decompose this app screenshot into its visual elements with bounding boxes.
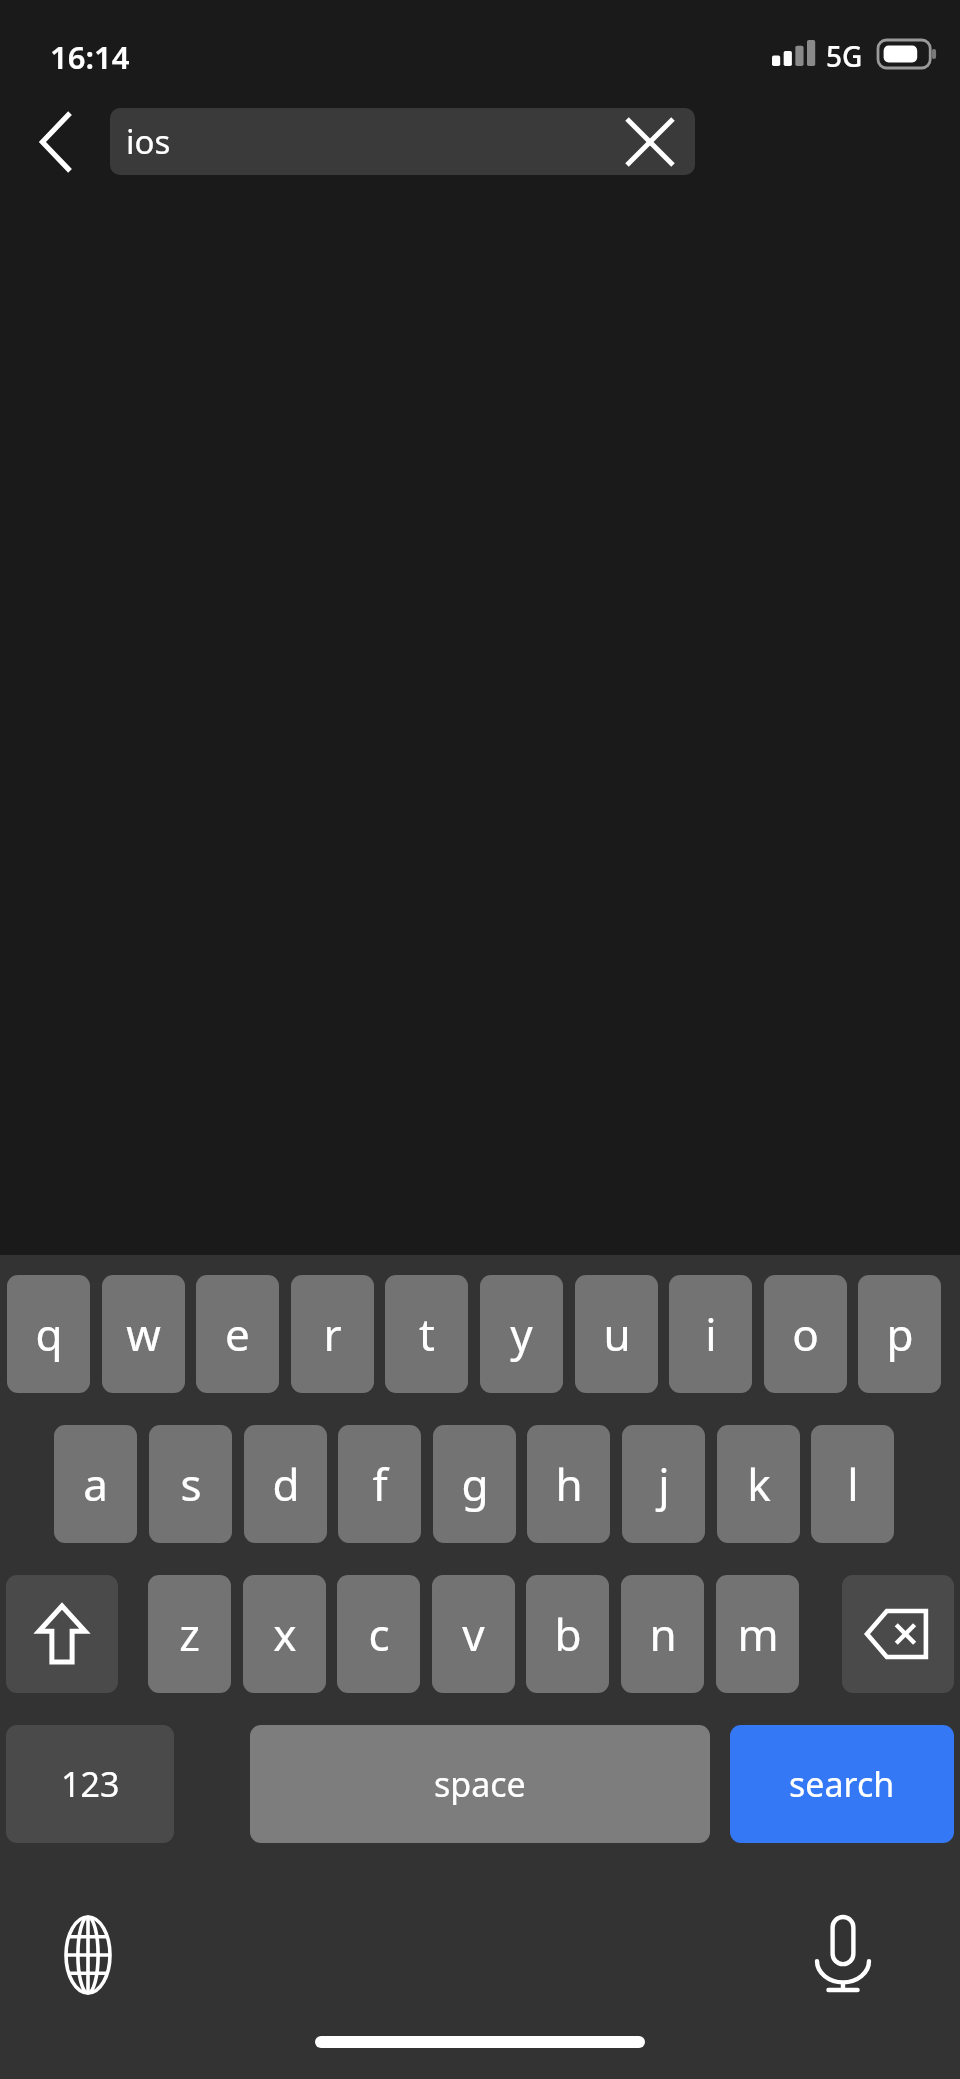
button[interactable]: search <box>730 1725 954 1843</box>
button[interactable]: z <box>148 1575 231 1693</box>
button[interactable]: k <box>717 1425 800 1543</box>
staticText: m <box>737 1604 779 1664</box>
button[interactable]: Back <box>18 104 94 180</box>
button[interactable]: d <box>244 1425 327 1543</box>
staticText: c <box>368 1604 390 1664</box>
staticText: p <box>886 1304 914 1364</box>
button[interactable]: x <box>243 1575 326 1693</box>
button[interactable]: g <box>433 1425 516 1543</box>
staticText: 16:14 <box>50 36 130 78</box>
staticText: j <box>658 1454 670 1514</box>
staticText: f <box>372 1454 388 1514</box>
staticText: i <box>705 1304 717 1364</box>
staticText: h <box>555 1454 583 1514</box>
staticText: l <box>847 1454 859 1514</box>
button[interactable]: Backspace <box>842 1575 954 1693</box>
button[interactable]: t <box>385 1275 468 1393</box>
button[interactable]: e <box>196 1275 279 1393</box>
button[interactable]: f <box>338 1425 421 1543</box>
staticText: s <box>180 1454 202 1514</box>
staticText: a <box>83 1454 108 1514</box>
button[interactable]: 123 <box>6 1725 174 1843</box>
button[interactable]: j <box>622 1425 705 1543</box>
button[interactable]: h <box>527 1425 610 1543</box>
staticText: u <box>603 1304 631 1364</box>
button[interactable]: i <box>669 1275 752 1393</box>
staticText: b <box>554 1604 582 1664</box>
staticText: search <box>789 1761 895 1807</box>
staticText: r <box>323 1304 342 1364</box>
button[interactable]: c <box>337 1575 420 1693</box>
staticText: x <box>273 1604 297 1664</box>
button[interactable]: u <box>575 1275 658 1393</box>
button[interactable]: r <box>291 1275 374 1393</box>
staticText: y <box>510 1304 533 1364</box>
staticText: k <box>747 1454 771 1514</box>
button[interactable]: w <box>102 1275 185 1393</box>
button[interactable]: y <box>480 1275 563 1393</box>
staticText: g <box>461 1454 489 1514</box>
button[interactable]: space <box>250 1725 710 1843</box>
staticText: t <box>419 1304 435 1364</box>
button[interactable]: Shift <box>6 1575 118 1693</box>
button[interactable]: Switch keyboard language <box>44 1903 132 2007</box>
button[interactable]: o <box>764 1275 847 1393</box>
button[interactable]: a <box>54 1425 137 1543</box>
button[interactable]: v <box>432 1575 515 1693</box>
staticText: q <box>35 1304 63 1364</box>
button[interactable]: l <box>811 1425 894 1543</box>
staticText: v <box>462 1604 485 1664</box>
staticText: d <box>272 1454 300 1514</box>
button[interactable]: s <box>149 1425 232 1543</box>
staticText: space <box>434 1761 526 1807</box>
button[interactable]: Clear search <box>610 104 690 180</box>
staticText: w <box>126 1304 161 1364</box>
button[interactable]: b <box>526 1575 609 1693</box>
button[interactable]: q <box>7 1275 90 1393</box>
staticText: z <box>179 1604 200 1664</box>
button[interactable]: Dictate <box>800 1903 886 2007</box>
staticText: ios <box>126 119 171 164</box>
staticText: e <box>225 1304 250 1364</box>
staticText: 123 <box>61 1761 120 1807</box>
button[interactable]: p <box>858 1275 941 1393</box>
staticText: 5G <box>826 37 863 75</box>
button[interactable]: n <box>621 1575 704 1693</box>
staticText: o <box>792 1304 819 1364</box>
staticText: n <box>649 1604 677 1664</box>
button[interactable]: m <box>716 1575 799 1693</box>
button[interactable]: ios <box>110 108 695 175</box>
